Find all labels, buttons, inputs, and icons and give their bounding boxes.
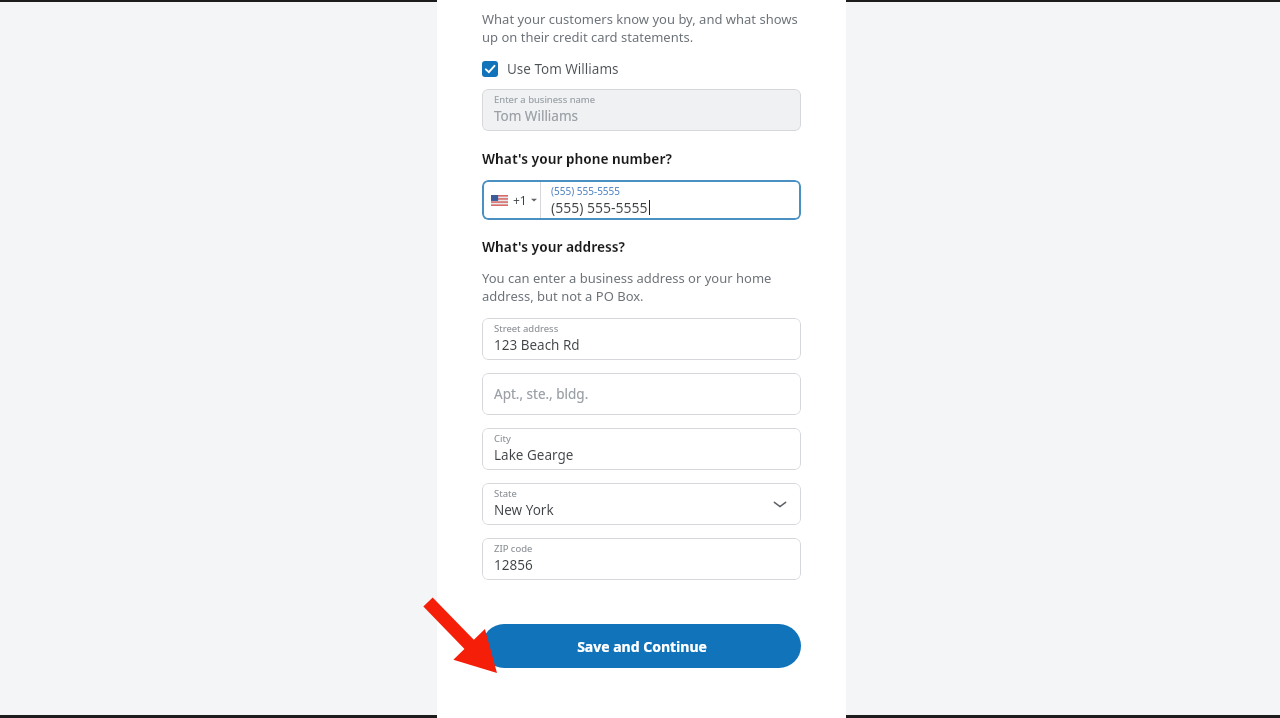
button[interactable]: City [482,428,801,470]
staticText: Apt., ste., bldg. [494,385,589,403]
staticText: Enter a business name [494,93,596,106]
button[interactable]: Country code [482,180,801,220]
staticText: Tom Williams [494,107,579,125]
staticText: (555) 555-5555 [551,198,648,217]
staticText: +1 [513,192,527,208]
staticText: (555) 555-5555 [551,184,621,198]
button[interactable]: State [482,483,801,525]
button[interactable]: Street address [482,318,801,360]
staticText: ZIP code [494,542,533,555]
staticText: New York [494,501,554,519]
button[interactable]: ZIP code [482,538,801,580]
button[interactable]: Country code [482,180,540,220]
staticText: State [494,487,517,500]
staticText: Lake Gearge [494,446,574,464]
staticText: 12856 [494,556,533,574]
staticText: What's your address? [482,238,625,256]
staticText: What your customers know you by, and wha… [482,10,801,46]
staticText: You can enter a business address or your… [482,269,801,305]
staticText: Save and Continue [577,637,707,656]
staticText: 123 Beach Rd [494,336,580,354]
button[interactable]: Use Tom Williams [482,60,619,78]
button[interactable]: Save and Continue [482,624,801,668]
staticText: Use Tom Williams [507,60,619,78]
button[interactable]: Apt., ste., bldg. [482,373,801,415]
button[interactable]: Enter a business name [482,89,801,131]
staticText: What's your phone number? [482,150,672,168]
staticText: Street address [494,322,559,335]
staticText: City [494,432,511,445]
